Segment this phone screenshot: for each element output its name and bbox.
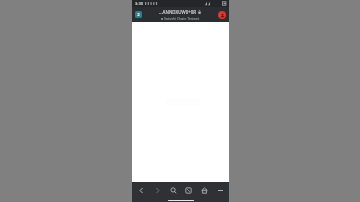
staticText: Satoshi Chain Testnet xyxy=(164,16,200,21)
staticText: ...ANNDXUW0+0R xyxy=(159,9,197,15)
button[interactable]: Back xyxy=(134,182,148,198)
staticText: 2 xyxy=(137,12,140,17)
button[interactable]: Tabs xyxy=(181,182,195,198)
button[interactable]: Switch tabs xyxy=(135,11,142,18)
button[interactable]: Search xyxy=(166,182,180,198)
button[interactable]: Forward xyxy=(150,182,164,198)
button[interactable]: ...ANNDXUW0+0R xyxy=(144,9,216,21)
button[interactable]: More options xyxy=(213,182,227,198)
button[interactable]: Home xyxy=(197,182,211,198)
button[interactable]: Account xyxy=(218,11,226,19)
staticText: 3:30 xyxy=(135,1,143,6)
